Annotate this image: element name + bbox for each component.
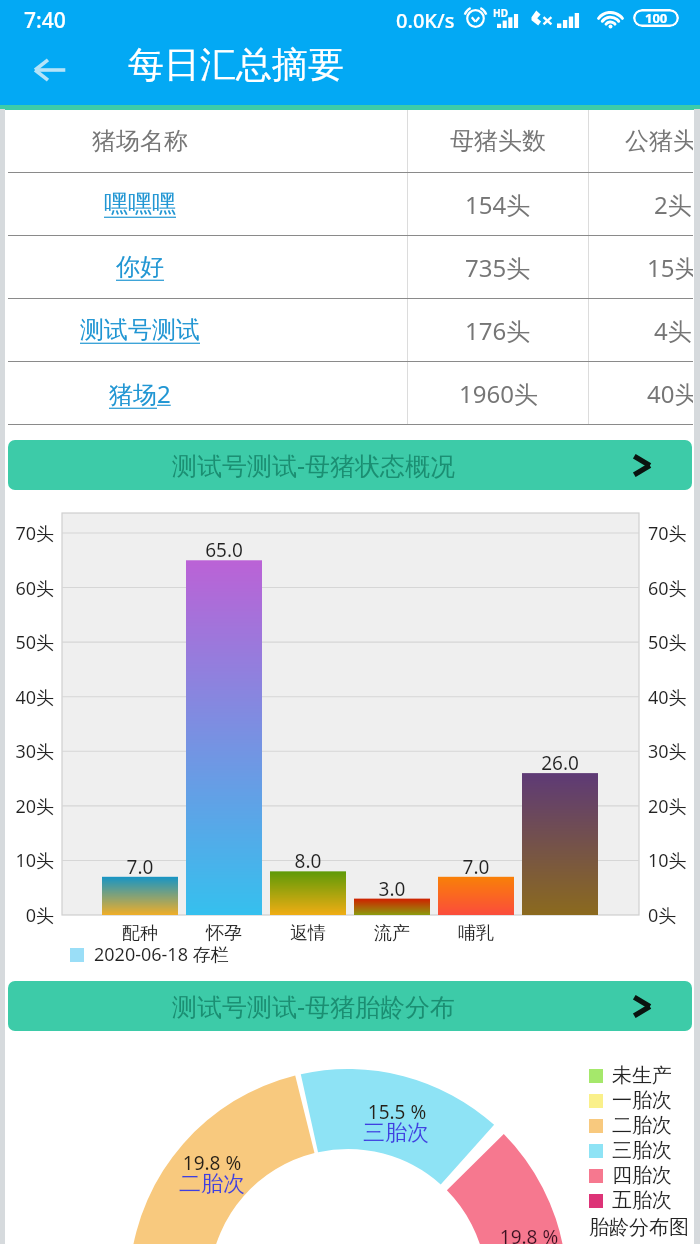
- staticText: 10头: [648, 848, 687, 873]
- staticText: 26.0: [512, 750, 608, 776]
- button[interactable]: 嘿嘿嘿: [8, 173, 272, 235]
- button[interactable]: 测试号测试-母猪胎龄分布: [8, 981, 692, 1031]
- staticText: 7.0: [428, 854, 524, 880]
- staticText: 0.0K/s: [396, 7, 455, 34]
- staticText: 你好: [116, 252, 164, 282]
- staticText: 154头: [465, 188, 531, 221]
- staticText: 猪场名称: [92, 126, 188, 156]
- staticText: 公猪头数: [625, 126, 693, 156]
- staticText: 嘿嘿嘿: [104, 189, 176, 219]
- staticText: 未生产: [612, 1063, 672, 1088]
- staticText: 母猪头数: [450, 126, 546, 156]
- button[interactable]: 猪场2: [8, 362, 272, 424]
- staticText: 70头: [648, 521, 687, 546]
- staticText: 2020-06-18 存栏: [94, 942, 229, 967]
- staticText: 哺乳: [428, 922, 524, 945]
- staticText: 20头: [0, 794, 54, 819]
- staticText: 19.8 %: [469, 1224, 589, 1244]
- staticText: HD: [493, 6, 508, 20]
- staticText: 一胎次: [612, 1088, 672, 1113]
- staticText: 40头: [0, 685, 54, 710]
- staticText: 猪场2: [109, 377, 171, 410]
- staticText: 7.0: [92, 854, 188, 880]
- staticText: 怀孕: [176, 922, 272, 945]
- staticText: 60头: [0, 576, 54, 601]
- button[interactable]: 你好: [8, 236, 272, 298]
- staticText: 二胎次: [152, 1170, 272, 1198]
- button[interactable]: Back: [22, 42, 78, 98]
- staticText: 70头: [0, 521, 54, 546]
- staticText: 60头: [648, 576, 687, 601]
- button[interactable]: 测试号测试-母猪状态概况: [8, 440, 692, 490]
- staticText: 测试号测试-母猪胎龄分布: [172, 989, 456, 1023]
- staticText: 735头: [465, 251, 531, 284]
- button[interactable]: 测试号测试: [8, 299, 272, 361]
- staticText: 20头: [648, 794, 687, 819]
- staticText: 8.0: [260, 848, 356, 874]
- staticText: 二胎次: [612, 1113, 672, 1138]
- staticText: 胎龄分布图: [589, 1215, 689, 1240]
- staticText: 五胎次: [612, 1188, 672, 1213]
- staticText: 176头: [465, 314, 531, 347]
- staticText: 0头: [648, 903, 677, 928]
- staticText: 15头: [647, 251, 693, 284]
- staticText: 测试号测试-母猪状态概况: [172, 448, 456, 482]
- staticText: 50头: [648, 630, 687, 655]
- staticText: 100: [645, 9, 668, 27]
- staticText: 1960头: [459, 377, 538, 410]
- staticText: 15.5 %: [337, 1099, 457, 1125]
- staticText: 3.0: [344, 876, 440, 902]
- staticText: 2头: [654, 188, 692, 221]
- staticText: 测试号测试: [80, 315, 200, 345]
- staticText: 返情: [260, 922, 356, 945]
- staticText: 三胎次: [336, 1119, 456, 1147]
- staticText: 7:40: [24, 6, 66, 35]
- staticText: 10头: [0, 848, 54, 873]
- staticText: 65.0: [176, 537, 272, 563]
- staticText: 4头: [654, 314, 692, 347]
- staticText: 0头: [0, 903, 54, 928]
- staticText: 流产: [344, 922, 440, 945]
- staticText: 40头: [648, 685, 687, 710]
- staticText: 30头: [0, 739, 54, 764]
- staticText: 四胎次: [612, 1163, 672, 1188]
- staticText: 40头: [647, 377, 693, 410]
- staticText: 配种: [92, 922, 188, 945]
- staticText: 50头: [0, 630, 54, 655]
- staticText: 19.8 %: [152, 1150, 272, 1176]
- staticText: 每日汇总摘要: [128, 42, 344, 87]
- staticText: 30头: [648, 739, 687, 764]
- staticText: 三胎次: [612, 1138, 672, 1163]
